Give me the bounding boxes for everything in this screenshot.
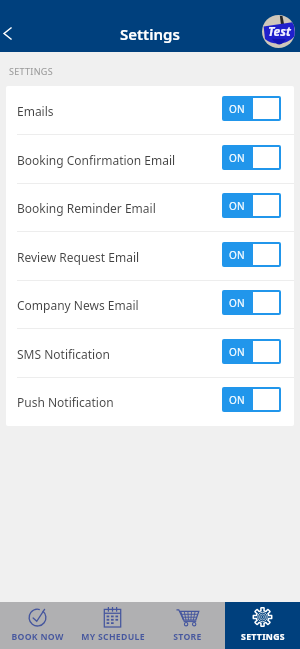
button[interactable]: Booking Reminder Email toggle, on	[222, 193, 281, 218]
button[interactable]: SMS Notification toggle, on	[222, 339, 281, 364]
button[interactable]: Review Request Email	[6, 232, 294, 281]
staticText: Booking Confirmation Email	[17, 152, 176, 168]
staticText: STORE	[173, 631, 202, 643]
staticText: ON	[229, 248, 246, 262]
button[interactable]: SETTINGS	[225, 602, 300, 649]
button[interactable]: Booking Reminder Email	[6, 183, 294, 232]
button[interactable]: Review Request Email toggle, on	[222, 242, 281, 267]
button[interactable]: Emails	[6, 86, 294, 135]
staticText: ON	[229, 296, 246, 310]
staticText: SETTINGS	[241, 631, 285, 643]
button[interactable]: MY SCHEDULE	[75, 602, 150, 649]
staticText: ON	[229, 102, 246, 116]
button[interactable]: Booking Confirmation Email toggle, on	[222, 145, 281, 170]
button[interactable]: SMS Notification	[6, 329, 294, 378]
button[interactable]: Company News Email toggle, on	[222, 290, 281, 315]
staticText: Push Notification	[17, 394, 114, 410]
button[interactable]: Emails toggle, on	[222, 96, 281, 121]
button[interactable]: STORE	[150, 602, 225, 649]
button[interactable]: Push Notification	[6, 377, 294, 426]
staticText: Booking Reminder Email	[17, 200, 156, 216]
staticText: Emails	[17, 103, 54, 119]
staticText: ON	[229, 345, 246, 359]
button[interactable]: Push Notification toggle, on	[222, 387, 281, 412]
button[interactable]: Back	[0, 17, 23, 49]
staticText: ON	[229, 393, 246, 407]
staticText: Company News Email	[17, 297, 139, 313]
button[interactable]: Booking Confirmation Email	[6, 135, 294, 184]
staticText: ON	[229, 199, 246, 213]
staticText: SETTINGS	[9, 65, 53, 77]
staticText: BOOK NOW	[11, 631, 64, 643]
staticText: Settings	[120, 24, 180, 44]
button[interactable]: Company News Email	[6, 280, 294, 329]
staticText: MY SCHEDULE	[81, 631, 145, 643]
staticText: Review Request Email	[17, 249, 140, 265]
staticText: Test	[268, 23, 291, 39]
staticText: ON	[229, 151, 246, 165]
staticText: SMS Notification	[17, 346, 110, 362]
button[interactable]: Profile	[262, 15, 295, 48]
button[interactable]: BOOK NOW	[0, 602, 75, 649]
